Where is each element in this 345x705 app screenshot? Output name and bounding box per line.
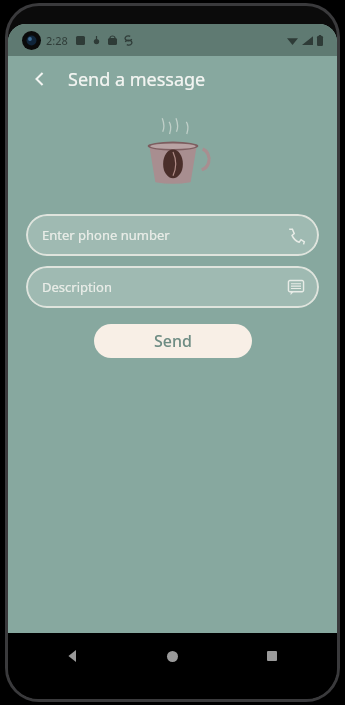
- button[interactable]: Recent apps: [255, 639, 289, 673]
- button[interactable]: Home: [155, 639, 189, 673]
- button[interactable]: Description: [26, 266, 319, 308]
- staticText: Description: [42, 278, 287, 296]
- button[interactable]: Enter phone number: [26, 214, 319, 256]
- other: Phone: [287, 226, 305, 244]
- staticText: Send a message: [68, 67, 206, 92]
- button[interactable]: Back: [20, 59, 60, 99]
- staticText: Send: [154, 330, 192, 352]
- button[interactable]: Send: [94, 324, 252, 358]
- staticText: Enter phone number: [42, 226, 287, 244]
- other: Message: [287, 278, 305, 296]
- staticText: 2:28: [46, 33, 68, 48]
- button[interactable]: Back: [56, 639, 90, 673]
